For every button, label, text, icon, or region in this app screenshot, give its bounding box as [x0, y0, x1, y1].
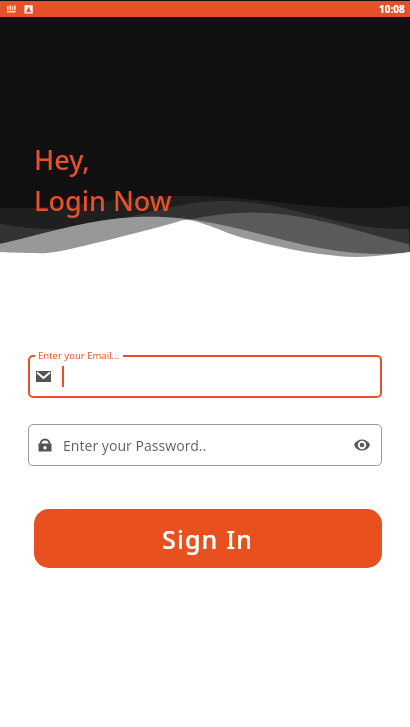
staticText: Login Now	[34, 182, 172, 219]
button[interactable]: Enter your Password..	[28, 424, 382, 466]
button[interactable]: Show password	[351, 434, 373, 456]
button[interactable]: Sign In	[34, 509, 382, 568]
staticText: Hey,	[34, 141, 90, 178]
staticText: Enter your Password..	[63, 436, 207, 455]
staticText: Enter your Email...	[38, 349, 120, 362]
button[interactable]	[28, 355, 382, 398]
staticText: 10:08	[379, 2, 405, 16]
staticText: Sign In	[162, 522, 254, 556]
